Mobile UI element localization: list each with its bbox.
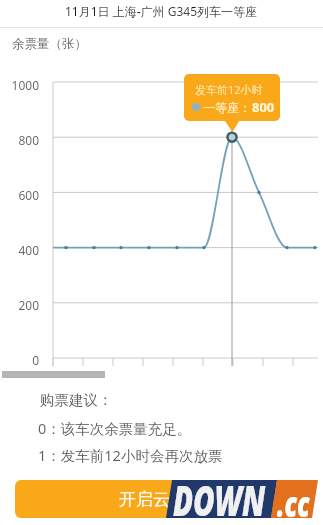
staticText: 0 — [32, 352, 39, 368]
staticText: 购票建议： — [40, 391, 113, 409]
staticText: 一等座： — [200, 99, 252, 115]
staticText: 0：该车次余票量充足。 — [38, 418, 192, 438]
staticText: 开启云抢票 — [119, 489, 204, 510]
staticText: 800 — [252, 98, 275, 116]
button[interactable]: 1：发车前12小时会再次放票 — [38, 445, 223, 465]
staticText: 1：发车前12小时会再次放票 — [38, 445, 223, 465]
button[interactable]: 购票建议： — [40, 391, 113, 409]
staticText: 200 — [18, 297, 39, 313]
button[interactable]: 开启云抢票 — [15, 480, 308, 518]
staticText: 1000 — [11, 77, 39, 93]
staticText: .cc — [277, 479, 310, 525]
staticText: 余票量（张） — [12, 36, 87, 52]
button[interactable]: 发车前12小时 — [184, 74, 280, 121]
staticText: DOWN — [173, 471, 266, 525]
staticText: 400 — [18, 242, 39, 258]
button[interactable]: 余票量（张） — [12, 36, 87, 52]
staticText: 11月1日 上海-广州 G345列车一等座 — [65, 3, 258, 19]
staticText: 800 — [18, 132, 39, 148]
button[interactable]: 11月1日 上海-广州 G345列车一等座 — [0, 0, 323, 24]
button[interactable]: 0：该车次余票量充足。 — [38, 418, 192, 438]
staticText: 发车前12小时 — [195, 82, 263, 97]
staticText: 600 — [18, 187, 39, 203]
